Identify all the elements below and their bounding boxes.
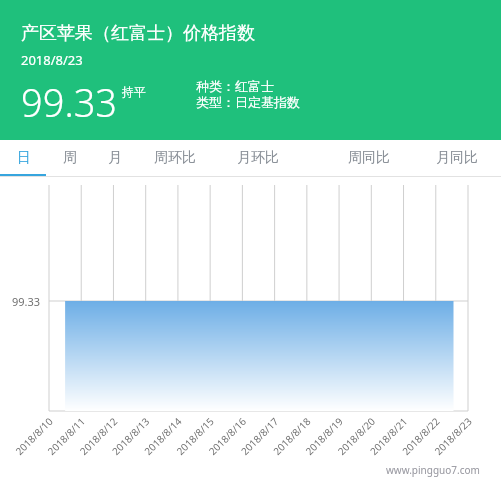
staticText: 种类：红富士 <box>196 78 274 94</box>
button[interactable] <box>93 140 140 177</box>
button[interactable] <box>47 140 93 177</box>
button[interactable] <box>305 140 415 177</box>
button[interactable] <box>216 140 305 177</box>
button[interactable] <box>140 140 216 177</box>
button[interactable] <box>0 140 47 177</box>
staticText: 2018/8/23 <box>21 51 83 69</box>
staticText: 99.33 <box>21 76 118 128</box>
staticText: 产区苹果（红富士）价格指数 <box>21 22 255 45</box>
staticText: 持平 <box>122 84 146 99</box>
staticText: 类型：日定基指数 <box>196 94 300 110</box>
button[interactable] <box>415 140 501 177</box>
